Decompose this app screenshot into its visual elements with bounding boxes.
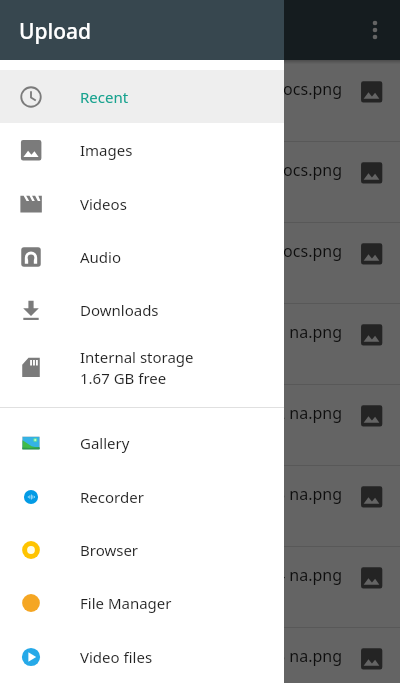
staticText: 12 Mar 2021 231 KB	[20, 349, 149, 367]
button[interactable]: Screenshot_20210316 docs.png	[0, 223, 400, 303]
button[interactable]: Screenshot_2021032 na.png	[0, 385, 400, 465]
button[interactable]: File Manager	[0, 576, 284, 629]
button[interactable]: Screenshot_2021033 na.png	[0, 466, 400, 546]
button[interactable]: Screenshot_20210314 docs.png	[0, 142, 400, 222]
staticText: Screenshot_20210312 docs.png	[20, 78, 342, 100]
button[interactable]: Screenshot_20210312 docs.png	[0, 61, 400, 141]
button[interactable]: Screenshot_2021031 na.png	[0, 304, 400, 384]
button[interactable]: Gallery	[0, 416, 284, 469]
staticText: Screenshot_2021034 na.png	[20, 564, 342, 586]
button[interactable]: Browser	[0, 523, 284, 576]
button[interactable]: Videos	[0, 177, 284, 230]
staticText: Internal storage	[80, 347, 194, 367]
button[interactable]: Recent	[0, 70, 284, 123]
staticText: Images	[80, 140, 133, 160]
button[interactable]: Screenshot_2021034 na.png	[0, 547, 400, 627]
staticText: Screenshot_2021032 na.png	[20, 402, 342, 424]
staticText: 12 Mar 2021 268 KB	[20, 430, 149, 448]
button[interactable]: Recorder	[0, 470, 284, 523]
staticText: Upload	[19, 17, 92, 46]
staticText: File Manager	[80, 593, 172, 613]
staticText: Browser	[80, 540, 139, 560]
button[interactable]: Internal storage	[0, 337, 284, 398]
staticText: Downloads	[80, 300, 159, 320]
button[interactable]: Screenshot_2021035 na.png	[0, 628, 400, 683]
staticText: Screenshot_20210314 docs.png	[20, 159, 342, 181]
staticText: 1.67 GB free	[80, 368, 167, 388]
button[interactable]: Images	[0, 123, 284, 176]
staticText: Audio	[80, 247, 122, 267]
staticText: Screenshot_20210316 docs.png	[20, 240, 342, 262]
button[interactable]: Video files	[0, 630, 284, 683]
button[interactable]: More options	[351, 6, 399, 54]
staticText: Upload	[19, 17, 92, 46]
staticText: Screenshot_2021033 na.png	[20, 483, 342, 505]
staticText: Recent	[80, 87, 129, 107]
button[interactable]: Downloads	[0, 283, 284, 336]
staticText: 12 Mar 2021 157 KB	[20, 187, 149, 205]
staticText: 12 Mar 2021 120 KB	[20, 106, 149, 124]
button[interactable]: Audio	[0, 230, 284, 283]
staticText: Screenshot_2021035 na.png	[20, 645, 342, 667]
staticText: Screenshot_2021031 na.png	[20, 321, 342, 343]
staticText: Recorder	[80, 487, 144, 507]
staticText: Gallery	[80, 433, 130, 453]
staticText: 12 Mar 2021 342 KB	[20, 592, 149, 610]
staticText: Video files	[80, 647, 153, 667]
staticText: Videos	[80, 194, 127, 214]
